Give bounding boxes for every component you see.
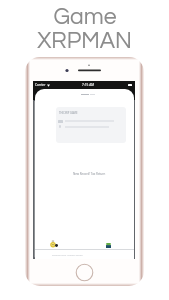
staticText: New Record! Tax Return bbox=[73, 172, 106, 176]
staticText: 7:15 AM bbox=[82, 83, 95, 87]
button[interactable]: Wallet bbox=[106, 243, 111, 248]
button[interactable]: Home bbox=[75, 263, 94, 282]
button[interactable]: Award bbox=[50, 240, 56, 248]
staticText: XRPMAN bbox=[37, 29, 132, 53]
staticText: xrpman.com privacy policy bbox=[52, 253, 83, 256]
staticText: Carrier bbox=[35, 83, 46, 87]
staticText: THE XRP GAME bbox=[59, 111, 78, 115]
staticText: Game bbox=[53, 5, 117, 29]
button[interactable]: THE XRP GAME bbox=[56, 107, 126, 143]
